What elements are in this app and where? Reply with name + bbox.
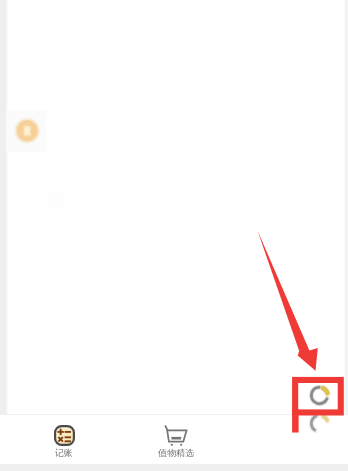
other: Loading: [310, 386, 329, 405]
button[interactable]: 记账: [36, 415, 92, 464]
button[interactable]: Quick action: [6, 110, 48, 154]
staticText: 记账: [55, 447, 73, 458]
staticText: 值物精选: [158, 447, 194, 458]
button[interactable]: 值物精选: [148, 415, 204, 464]
